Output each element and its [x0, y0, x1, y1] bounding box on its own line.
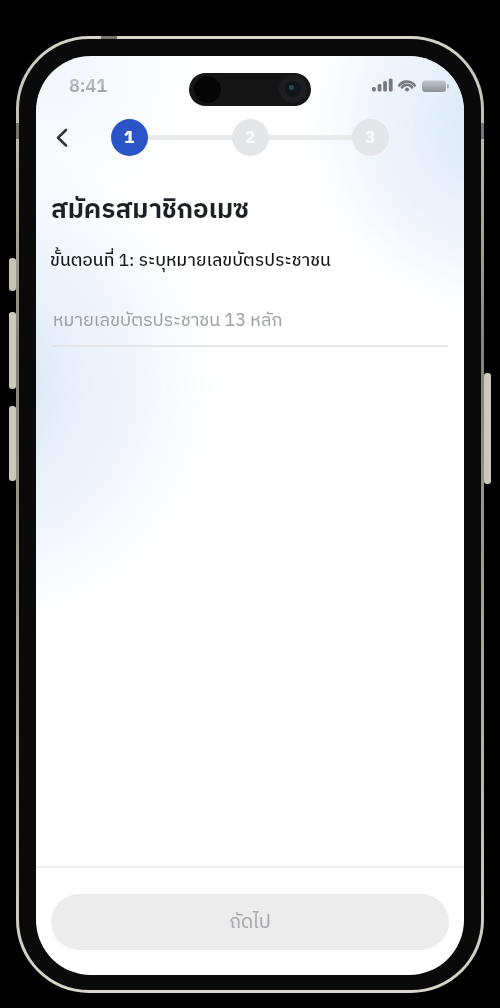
button[interactable]: หมายเลขบัตรประชาชน 13 หลัก	[51, 296, 448, 348]
staticText: 2	[245, 124, 256, 152]
staticText: 3	[365, 124, 376, 152]
staticText: 1	[124, 124, 135, 152]
staticText: หมายเลขบัตรประชาชน 13 หลัก	[53, 306, 283, 336]
button[interactable]	[44, 123, 74, 153]
staticText: ขั้นตอนที่ 1: ระบุหมายเลขบัตรประชาชน	[50, 246, 331, 275]
staticText: 8:41	[69, 72, 108, 102]
button[interactable]: ถัดไป	[51, 894, 449, 950]
staticText: สมัครสมาชิกอเมซ	[51, 189, 249, 232]
staticText: ถัดไป	[229, 907, 271, 938]
